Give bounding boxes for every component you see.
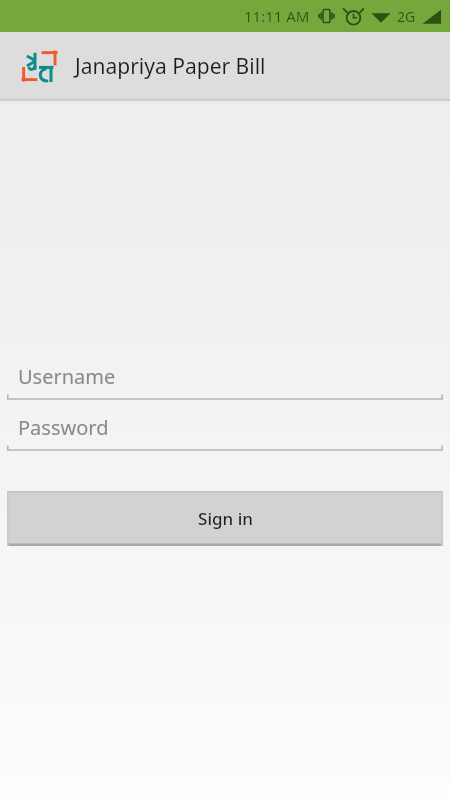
staticText: Password — [18, 414, 109, 441]
button[interactable]: Sign in — [7, 491, 443, 546]
staticText: Sign in — [198, 507, 253, 530]
staticText: 11:11 AM — [244, 6, 310, 26]
other: Janapriya logo — [19, 46, 59, 86]
button[interactable]: Username — [7, 359, 443, 400]
staticText: Username — [18, 363, 116, 390]
staticText: Janapriya Paper Bill — [75, 52, 266, 81]
button[interactable]: Password — [7, 410, 443, 451]
staticText: 2G — [397, 7, 416, 26]
